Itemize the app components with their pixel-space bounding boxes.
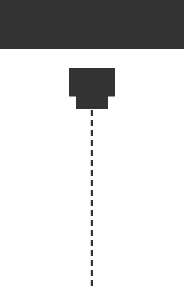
button[interactable]: Marker (0, 0, 184, 286)
